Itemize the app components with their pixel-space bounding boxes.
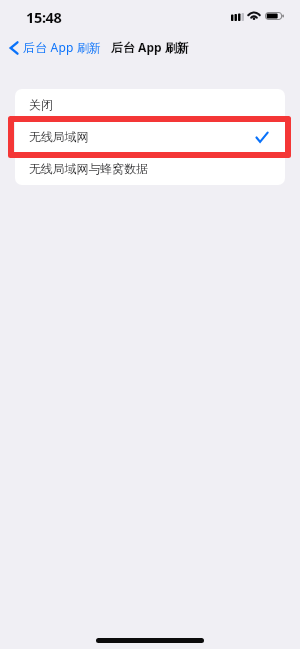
- button[interactable]: 关闭: [15, 89, 285, 121]
- staticText: 后台 App 刷新: [111, 39, 189, 55]
- staticText: 无线局域网: [29, 129, 89, 144]
- staticText: 15:48: [26, 7, 62, 27]
- button[interactable]: 后台 App 刷新: [0, 34, 110, 62]
- staticText: 后台 App 刷新: [23, 39, 102, 55]
- button[interactable]: 无线局域网与蜂窝数据: [15, 153, 285, 185]
- other: Selected: [256, 132, 268, 143]
- staticText: 无线局域网与蜂窝数据: [29, 161, 148, 176]
- button[interactable]: 无线局域网: [15, 121, 285, 153]
- staticText: 关闭: [29, 97, 53, 112]
